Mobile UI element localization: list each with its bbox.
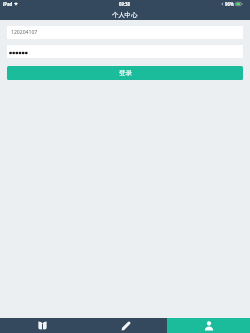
button[interactable] [9, 45, 239, 58]
button[interactable]: 120204107 [11, 26, 239, 39]
staticText: 登录 [119, 69, 132, 77]
staticText: 120204107 [11, 29, 38, 36]
staticText: 个人中心 [112, 11, 138, 19]
button[interactable]: Profile [167, 318, 250, 333]
staticText: iPad [3, 1, 13, 7]
button[interactable]: Library [0, 318, 84, 333]
button[interactable]: Write note [84, 318, 167, 333]
button[interactable]: 登录 [7, 66, 243, 80]
staticText: 09:38 [119, 1, 131, 7]
staticText: 96% [225, 1, 234, 7]
